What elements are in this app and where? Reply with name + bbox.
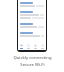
- staticText: Quickly connecting: [13, 55, 52, 61]
- button[interactable]: [20, 11, 33, 13]
- button[interactable]: [20, 32, 33, 34]
- staticText: Secure Wi-Fi: [20, 62, 45, 68]
- button[interactable]: [20, 17, 44, 19]
- button[interactable]: [20, 23, 33, 25]
- button[interactable]: [20, 26, 44, 28]
- button[interactable]: Security: [32, 43, 39, 50]
- button[interactable]: [20, 5, 44, 7]
- button[interactable]: [20, 14, 44, 16]
- button[interactable]: [20, 35, 44, 37]
- button[interactable]: [20, 2, 33, 4]
- button[interactable]: Wi-Fi: [18, 43, 25, 50]
- button[interactable]: Settings: [39, 43, 46, 50]
- button[interactable]: Devices: [25, 43, 32, 50]
